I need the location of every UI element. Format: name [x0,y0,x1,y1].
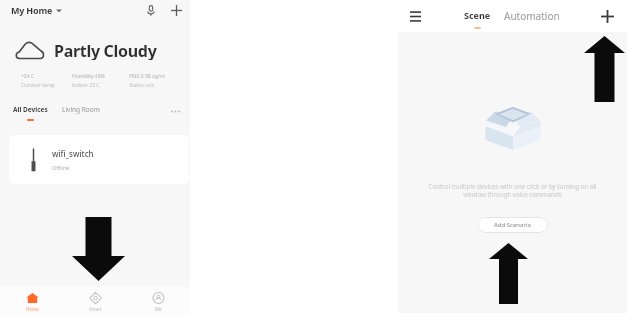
button[interactable]: Menu [406,7,424,25]
staticText: Status: n/a [129,82,155,89]
staticText: Smart [89,306,102,312]
button[interactable]: My Home [11,0,62,20]
button[interactable]: Add device [168,0,184,20]
staticText: Partly Cloudy [54,40,157,60]
button[interactable]: Voice command [143,0,159,20]
button[interactable]: Living Room [62,105,100,114]
staticText: Indoor 23 C [72,82,100,89]
button[interactable]: Home [0,287,64,316]
staticText: Me [155,306,162,312]
button[interactable]: Scene [464,9,491,29]
staticText: Control multiple devices with one click … [408,182,617,198]
button[interactable]: Me [127,287,190,316]
button[interactable]: Add Scenario [478,217,548,233]
staticText: Scene [464,9,491,21]
staticText: Offline [52,164,70,171]
staticText: Humidity 45% [72,73,105,80]
button[interactable]: wifi_switch [9,135,189,184]
button[interactable]: Smart [64,287,127,316]
staticText: Add Scenario [494,221,532,229]
button[interactable]: Automation [504,9,560,23]
staticText: PM2.5 58 ug/m [129,73,165,80]
button[interactable]: Add scene [597,6,617,26]
staticText: Outdoor temp [21,82,55,89]
staticText: Home [26,306,39,312]
staticText: +24 C [21,73,35,80]
button[interactable]: More options [168,105,182,117]
staticText: My Home [11,4,53,16]
staticText: All Devices [13,105,48,114]
button[interactable]: All Devices [13,105,48,121]
staticText: wifi_switch [52,148,94,159]
